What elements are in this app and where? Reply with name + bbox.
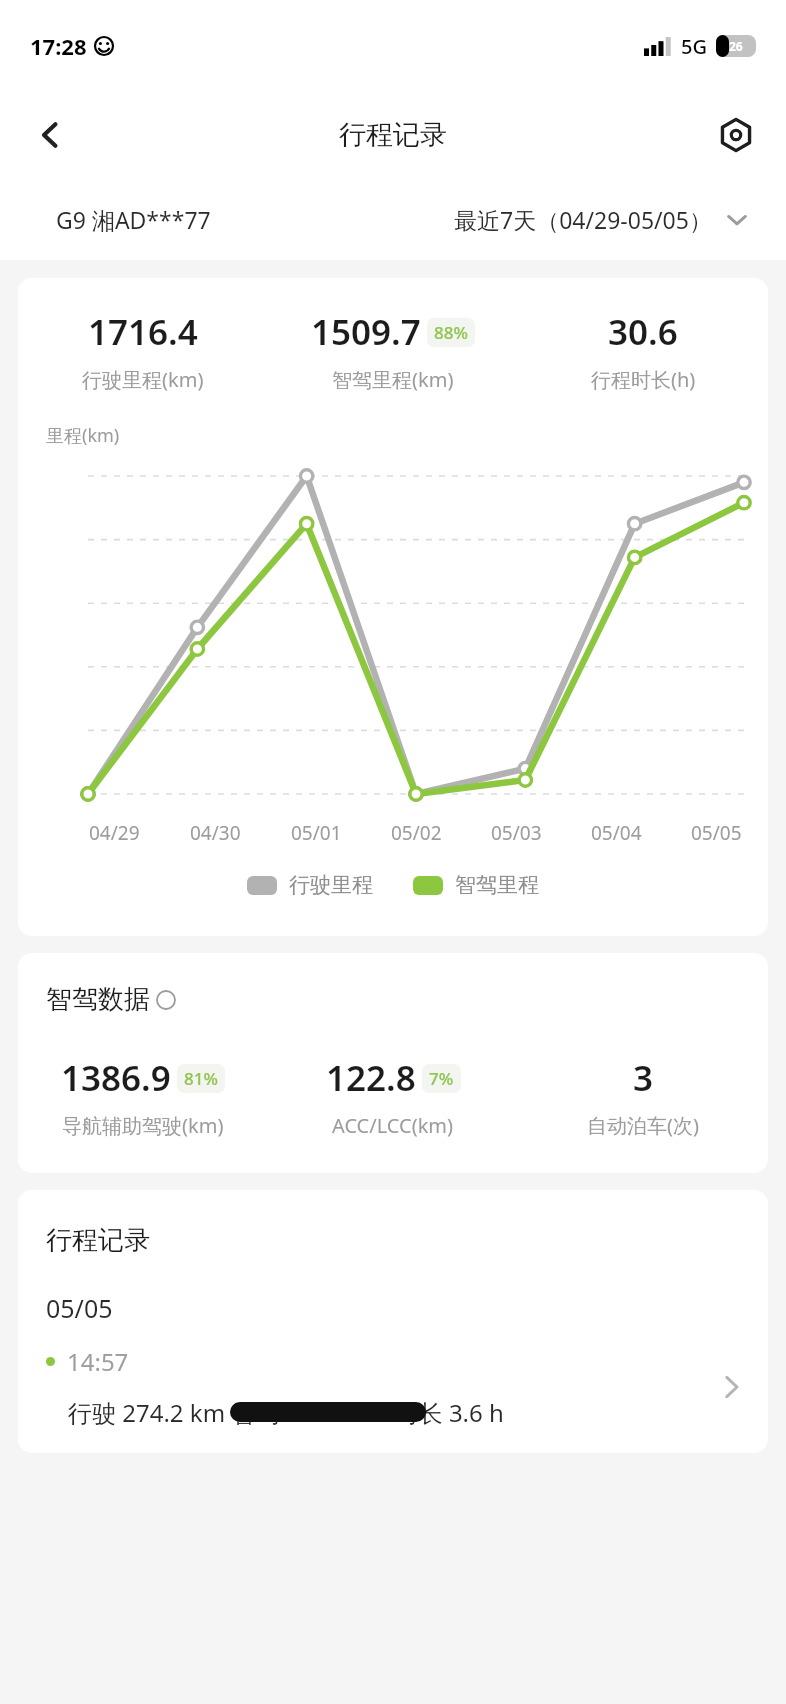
staticText: 04/30: [190, 820, 241, 846]
staticText: 自动泊车(次): [587, 1112, 699, 1139]
staticText: 智驾数据: [46, 983, 150, 1016]
button[interactable]: 智驾数据: [46, 983, 176, 1016]
staticText: 行驶 274.2 km 智驾 263.6 km 时长 3.6 h: [68, 1396, 504, 1429]
staticText: 行程记录: [46, 1224, 150, 1257]
staticText: 05/02: [391, 820, 442, 846]
staticText: 行程记录: [339, 118, 447, 152]
button[interactable]: Back: [22, 107, 78, 163]
staticText: 81%: [184, 1067, 218, 1090]
staticText: 3: [633, 1054, 654, 1102]
button[interactable]: 14:57: [18, 1345, 768, 1429]
staticText: 里程(km): [46, 423, 120, 448]
staticText: 最近7天（04/29-05/05）: [454, 204, 712, 235]
staticText: ACC/LCC(km): [332, 1112, 454, 1139]
staticText: 5G: [681, 33, 707, 60]
staticText: 智驾里程(km): [332, 366, 454, 393]
staticText: 行驶里程(km): [82, 366, 204, 393]
staticText: 1716.4: [88, 308, 198, 356]
staticText: 1386.9: [61, 1054, 171, 1102]
staticText: 14:57: [67, 1345, 129, 1378]
staticText: 05/01: [291, 820, 342, 846]
button[interactable]: 行驶里程: [247, 872, 373, 898]
staticText: 122.8: [326, 1054, 416, 1102]
staticText: 26: [729, 38, 743, 54]
staticText: 行驶里程: [289, 872, 373, 898]
staticText: 7%: [429, 1067, 454, 1090]
staticText: 05/05: [691, 820, 742, 846]
staticText: 行程时长(h): [591, 366, 696, 393]
staticText: 导航辅助驾驶(km): [62, 1112, 224, 1139]
button[interactable]: 智驾里程: [413, 872, 539, 898]
staticText: 05/05: [46, 1291, 113, 1325]
button[interactable]: G9 湘AD***77: [56, 204, 211, 235]
staticText: 05/04: [591, 820, 642, 846]
staticText: 05/03: [491, 820, 542, 846]
staticText: 30.6: [608, 308, 678, 356]
staticText: 智驾里程: [455, 872, 539, 898]
staticText: 88%: [434, 321, 468, 344]
button[interactable]: Settings: [708, 107, 764, 163]
staticText: 17:28: [30, 31, 87, 61]
button[interactable]: 最近7天（04/29-05/05）: [454, 204, 748, 235]
staticText: 04/29: [89, 820, 140, 846]
staticText: 1509.7: [311, 308, 421, 356]
